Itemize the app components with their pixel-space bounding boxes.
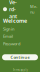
staticText: Terms apply (12, 68, 27, 72)
staticText: Welcome (3, 17, 27, 24)
staticText: Password (3, 41, 20, 46)
staticText: Verdant (9, 0, 17, 20)
button[interactable]: Continue (2, 54, 38, 60)
staticText: Continue (10, 55, 29, 60)
staticText: Sign in (3, 26, 14, 32)
staticText: Menu (30, 4, 37, 14)
staticText: Email (3, 34, 13, 39)
